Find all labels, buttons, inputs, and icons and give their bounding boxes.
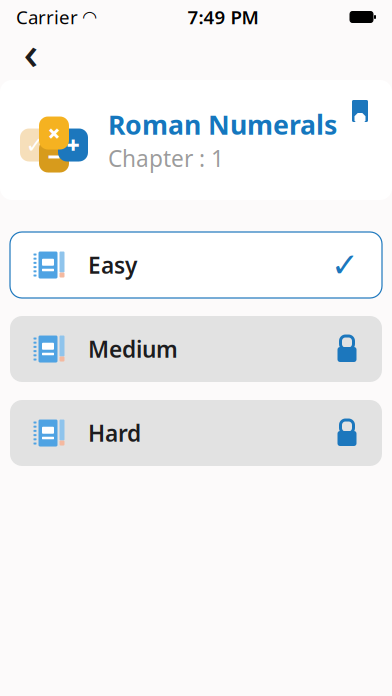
button[interactable]: Easy [10,232,382,298]
staticText: Medium [88,334,178,364]
staticText: ✓ [331,246,359,284]
button[interactable]: Bookmark [352,80,392,122]
staticText: ◠ [83,7,96,27]
staticText: ‹ [23,22,38,82]
button[interactable]: Back [12,33,50,71]
staticText: + [66,130,79,160]
staticText: Roman Numerals [108,107,337,142]
staticText: 7:49 PM [187,5,258,29]
staticText: − [47,141,60,171]
button[interactable]: Medium [10,316,382,382]
staticText: Hard [88,418,141,448]
staticText: Chapter : 1 [108,143,224,173]
staticText: Carrier [16,5,78,29]
staticText: Easy [88,250,137,280]
staticText: × [47,118,60,148]
staticText: ✓ [25,132,44,158]
button[interactable]: Hard [10,400,382,466]
